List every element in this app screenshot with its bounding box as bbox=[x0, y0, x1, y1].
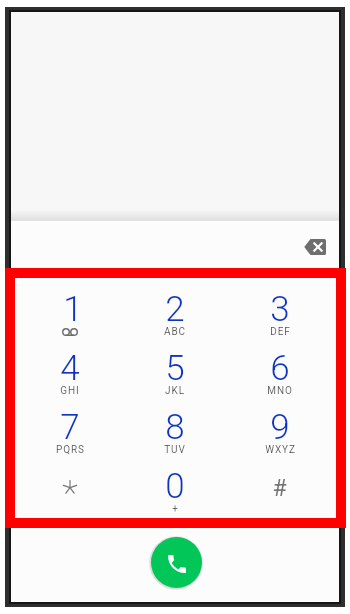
staticText: 1 bbox=[63, 289, 83, 330]
staticText: 3 bbox=[270, 289, 290, 330]
button[interactable]: 0 bbox=[135, 456, 215, 516]
staticText: DEF bbox=[270, 326, 291, 338]
button[interactable]: Call bbox=[144, 530, 208, 594]
staticText: + bbox=[172, 503, 179, 515]
staticText: 0 bbox=[165, 466, 185, 507]
staticText: ABC bbox=[164, 326, 186, 338]
staticText: JKL bbox=[165, 385, 185, 397]
staticText: MNO bbox=[267, 385, 293, 397]
staticText: WXYZ bbox=[265, 444, 296, 456]
staticText: TUV bbox=[164, 444, 186, 456]
button[interactable]: 2 bbox=[135, 279, 215, 339]
staticText: 5 bbox=[165, 348, 185, 389]
button[interactable] bbox=[30, 456, 110, 516]
button[interactable]: 8 bbox=[135, 397, 215, 457]
staticText: 8 bbox=[165, 407, 185, 448]
staticText: 6 bbox=[270, 348, 290, 389]
button[interactable]: Backspace bbox=[297, 229, 333, 265]
button[interactable]: 7 bbox=[30, 397, 110, 457]
staticText: GHI bbox=[60, 385, 80, 397]
button[interactable]: 5 bbox=[135, 338, 215, 398]
button[interactable]: 1 bbox=[30, 279, 110, 339]
staticText: 9 bbox=[270, 407, 290, 448]
staticText: # bbox=[272, 475, 287, 502]
staticText: PQRS bbox=[56, 444, 85, 456]
button[interactable]: 6 bbox=[240, 338, 320, 398]
staticText: 4 bbox=[60, 348, 80, 389]
button[interactable]: # bbox=[240, 456, 320, 516]
staticText: 7 bbox=[60, 407, 80, 448]
button[interactable]: 9 bbox=[240, 397, 320, 457]
button[interactable]: 3 bbox=[240, 279, 320, 339]
button[interactable]: 4 bbox=[30, 338, 110, 398]
staticText: 2 bbox=[165, 289, 185, 330]
